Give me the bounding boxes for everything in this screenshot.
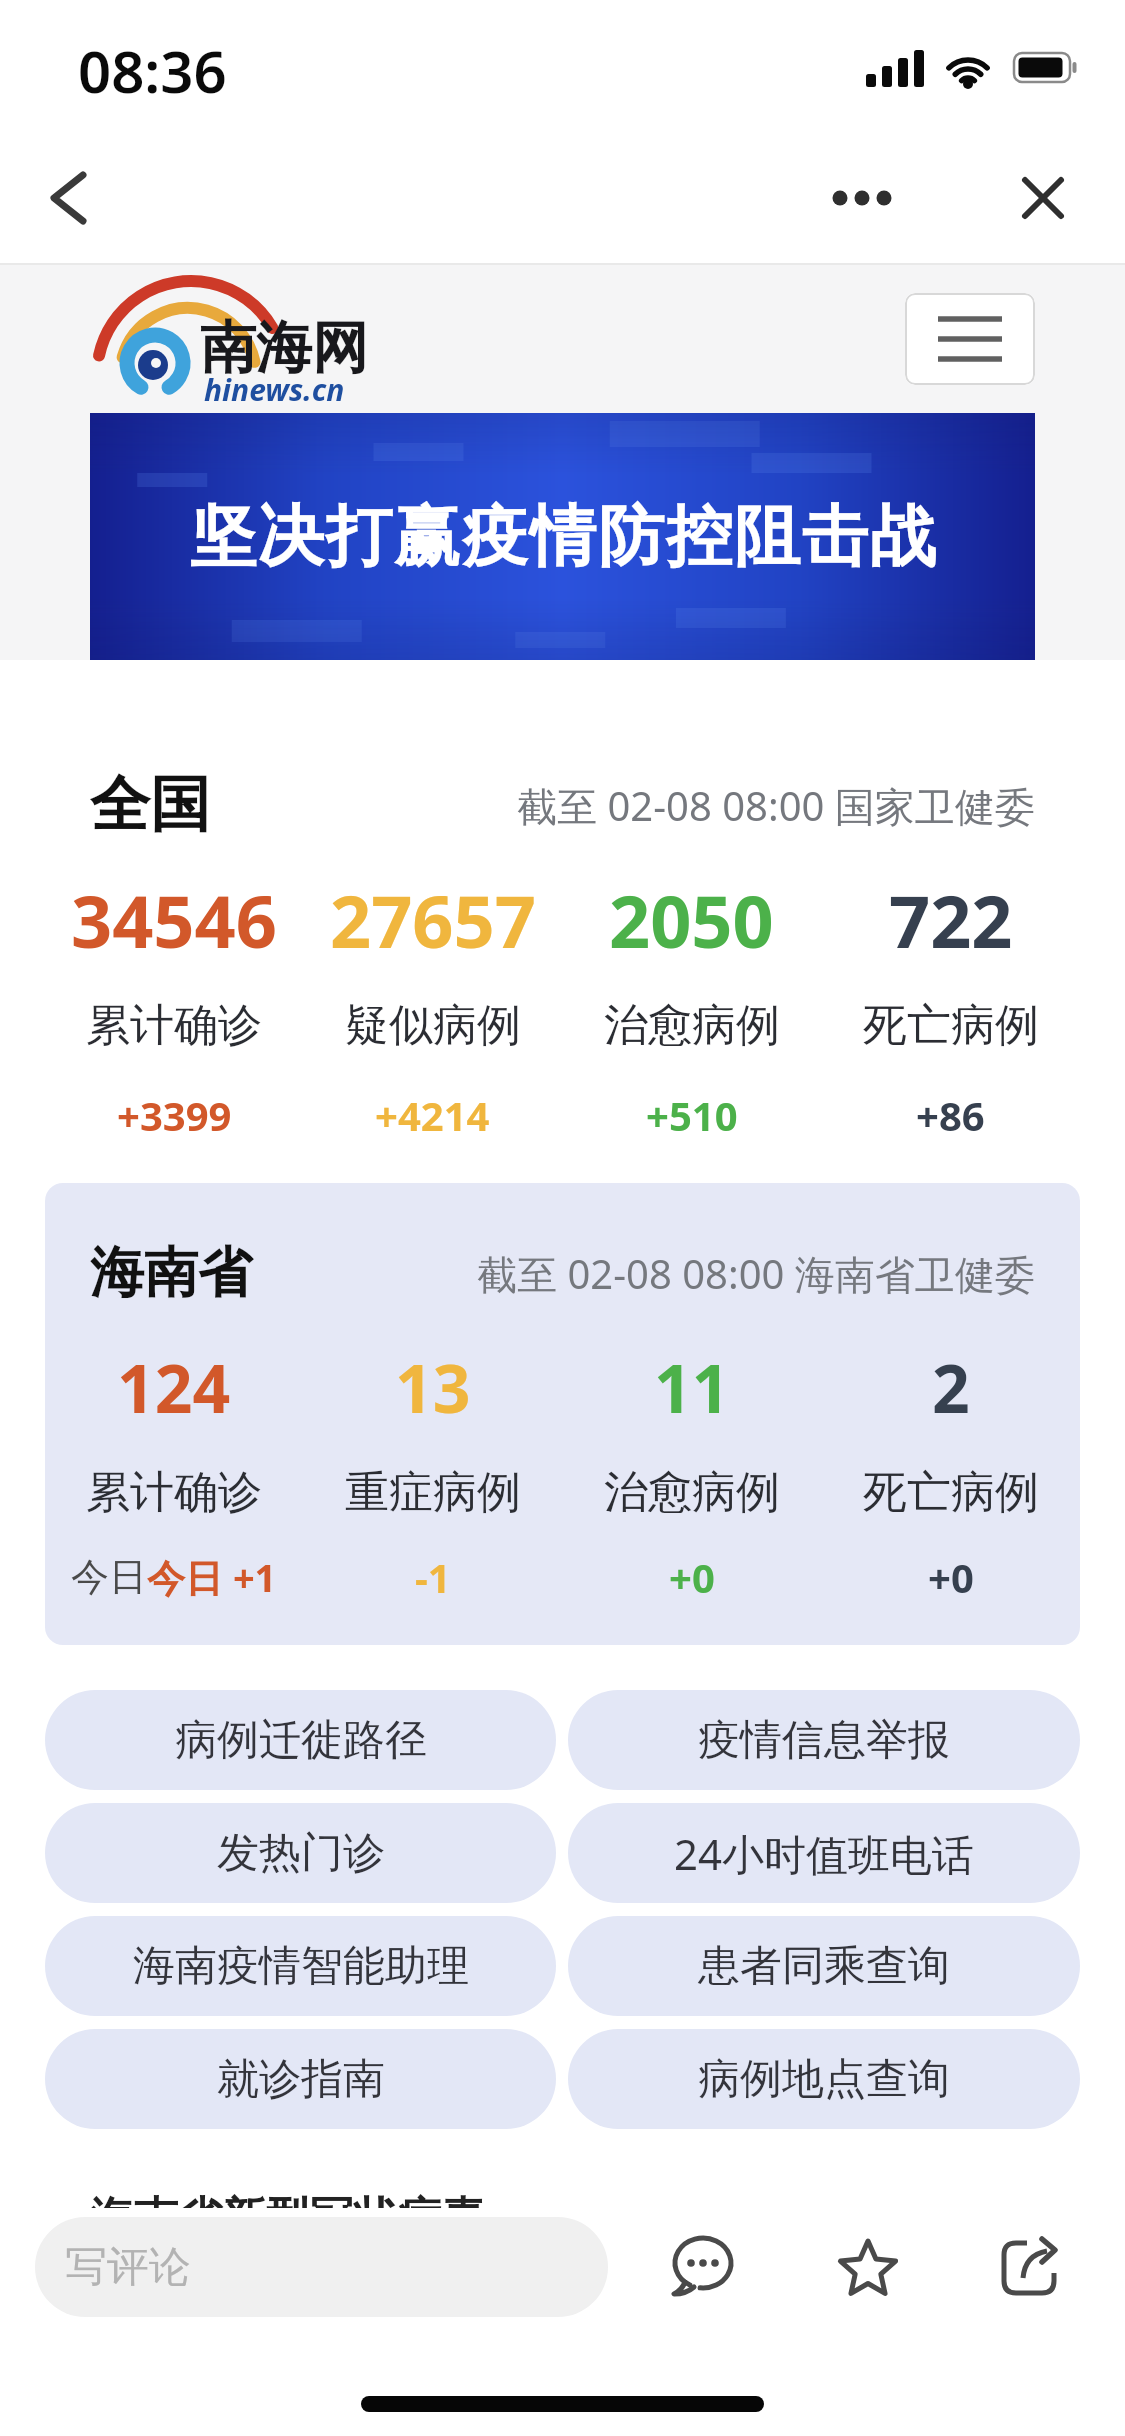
staticText: 2 [932, 1342, 970, 1432]
staticText: 海南省 [90, 1239, 252, 1307]
staticText: -1 [415, 1550, 451, 1604]
staticText: 写评论 [65, 2241, 191, 2294]
button[interactable] [905, 293, 1035, 385]
staticText: 今日 [71, 1553, 147, 1601]
staticText: 发热门诊 [217, 1827, 385, 1880]
button[interactable]: 24小时值班电话 [568, 1803, 1080, 1903]
staticText: +510 [646, 1088, 738, 1142]
staticText: 坚决打赢疫情防控阻击战 [189, 495, 937, 578]
staticText: 722 [889, 871, 1013, 969]
staticText: 重症病例 [345, 1465, 521, 1520]
button[interactable] [36, 166, 100, 230]
button[interactable]: 病例迁徙路径 [45, 1690, 556, 1790]
staticText: 全国 [90, 767, 210, 843]
staticText: 截至 02-08 08:00 海南省卫健委 [477, 1246, 1035, 1301]
staticText: 患者同乘查询 [698, 1940, 950, 1993]
staticText: 27657 [330, 871, 536, 969]
button[interactable]: 南海网 [88, 273, 398, 405]
button[interactable] [826, 168, 898, 228]
staticText: 死亡病例 [863, 998, 1039, 1053]
staticText: 累计确诊 [86, 998, 262, 1053]
staticText: 死亡病例 [863, 1465, 1039, 1520]
button[interactable]: 写评论 [35, 2217, 608, 2317]
staticText: +0 [928, 1550, 974, 1604]
staticText: 就诊指南 [217, 2053, 385, 2106]
button[interactable]: 疫情信息举报 [568, 1690, 1080, 1790]
staticText: +3399 [117, 1088, 232, 1142]
staticText: 治愈病例 [604, 998, 780, 1053]
button[interactable]: 海南疫情智能助理 [45, 1916, 556, 2016]
staticText: 34546 [71, 871, 277, 969]
staticText: 南海网 [200, 313, 368, 384]
staticText: 病例迁徙路径 [175, 1714, 427, 1767]
staticText: 累计确诊 [86, 1465, 262, 1520]
button[interactable] [1013, 168, 1073, 228]
staticText: 疫情信息举报 [698, 1714, 950, 1767]
staticText: hinews.cn [204, 369, 345, 410]
staticText: 截至 02-08 08:00 国家卫健委 [517, 778, 1035, 833]
staticText: 2050 [609, 871, 774, 969]
staticText: 海南疫情智能助理 [133, 1940, 469, 1993]
button[interactable] [990, 2227, 1070, 2307]
staticText: 24小时值班电话 [674, 1825, 975, 1882]
staticText: 13 [395, 1342, 471, 1432]
staticText: 124 [117, 1342, 231, 1432]
button[interactable]: 坚决打赢疫情防控阻击战 [90, 413, 1035, 660]
staticText: 海南省新型冠状病毒 [90, 2191, 486, 2208]
button[interactable]: 病例地点查询 [568, 2029, 1080, 2129]
staticText: 11 [654, 1342, 730, 1432]
staticText: 08:36 [78, 31, 227, 110]
staticText: 病例地点查询 [698, 2053, 950, 2106]
button[interactable]: 就诊指南 [45, 2029, 556, 2129]
staticText: 今日 +1 [147, 1551, 277, 1603]
button[interactable] [663, 2227, 743, 2307]
button[interactable] [828, 2227, 908, 2307]
button[interactable]: 患者同乘查询 [568, 1916, 1080, 2016]
button[interactable]: 发热门诊 [45, 1803, 556, 1903]
staticText: +4214 [375, 1088, 490, 1142]
staticText: +86 [916, 1088, 985, 1142]
staticText: 治愈病例 [604, 1465, 780, 1520]
staticText: +0 [669, 1550, 715, 1604]
staticText: 疑似病例 [345, 998, 521, 1053]
